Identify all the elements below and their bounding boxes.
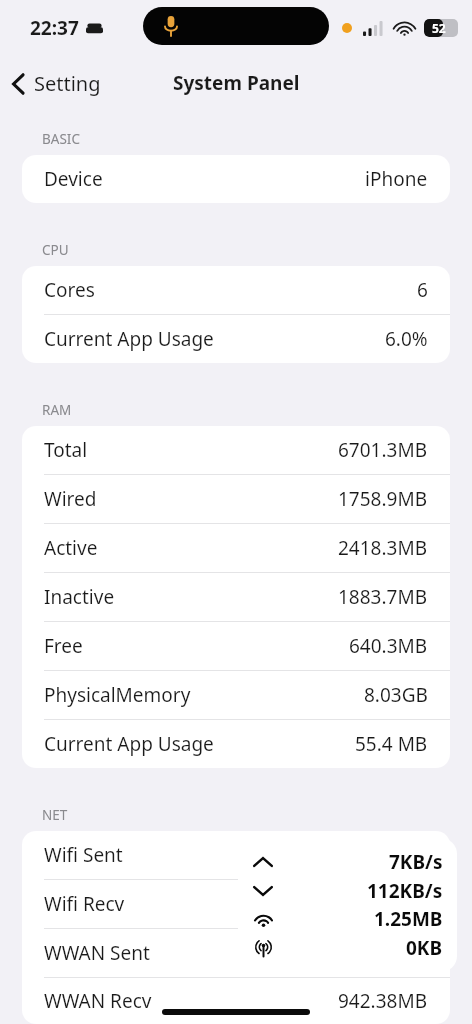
- button[interactable]: Device: [22, 155, 450, 203]
- staticText: 1883.7MB: [338, 584, 428, 610]
- button[interactable]: Current App Usage: [22, 720, 450, 768]
- staticText: 1758.9MB: [338, 486, 428, 512]
- staticText: 942.38MB: [338, 988, 428, 1014]
- staticText: RAM: [42, 401, 72, 419]
- button[interactable]: WWAN Recv: [22, 978, 450, 1024]
- button[interactable]: Current App Usage: [22, 315, 450, 363]
- button[interactable]: WWAN Sent: [22, 929, 450, 977]
- staticText: 52: [432, 20, 446, 36]
- staticText: 0.00GB: [364, 842, 428, 868]
- staticText: 6701.3MB: [338, 437, 428, 463]
- staticText: System Panel: [173, 70, 300, 96]
- staticText: 6: [417, 277, 428, 303]
- staticText: Cores: [44, 277, 95, 303]
- button[interactable]: Active: [22, 524, 450, 572]
- staticText: Free: [44, 633, 83, 659]
- staticText: 112KB/s: [367, 878, 443, 904]
- staticText: Wifi Recv: [44, 891, 125, 917]
- staticText: Active: [44, 535, 98, 561]
- button[interactable]: Wifi Recv: [22, 880, 450, 928]
- staticText: WWAN Sent: [44, 940, 150, 966]
- button[interactable]: Inactive: [22, 573, 450, 621]
- staticText: 7KB/s: [389, 849, 443, 875]
- staticText: NET: [42, 806, 68, 824]
- staticText: 8.03GB: [364, 682, 428, 708]
- staticText: 0KB: [406, 935, 443, 961]
- staticText: 640.3MB: [349, 633, 428, 659]
- staticText: Total: [44, 437, 88, 463]
- staticText: Inactive: [44, 584, 115, 610]
- staticText: 1.25MB: [374, 906, 443, 932]
- staticText: PhysicalMemory: [44, 682, 191, 708]
- button[interactable]: Setting: [0, 64, 113, 103]
- staticText: iPhone: [365, 166, 428, 192]
- button[interactable]: Total: [22, 426, 450, 474]
- button[interactable]: Free: [22, 622, 450, 670]
- button[interactable]: Wifi Sent: [22, 831, 450, 879]
- staticText: 55.4 MB: [355, 731, 428, 757]
- staticText: WWAN Recv: [44, 988, 152, 1014]
- staticText: Device: [44, 166, 103, 192]
- staticText: Current App Usage: [44, 731, 214, 757]
- staticText: Wired: [44, 486, 97, 512]
- staticText: Wifi Sent: [44, 842, 123, 868]
- staticText: Setting: [34, 70, 101, 97]
- staticText: CPU: [42, 241, 69, 259]
- button[interactable]: 7KB/s: [238, 838, 457, 972]
- staticText: 2418.3MB: [338, 535, 428, 561]
- button[interactable]: Cores: [22, 266, 450, 314]
- button[interactable]: Wired: [22, 475, 450, 523]
- button[interactable]: PhysicalMemory: [22, 671, 450, 719]
- staticText: BASIC: [42, 130, 80, 148]
- staticText: Current App Usage: [44, 326, 214, 352]
- staticText: 6.0%: [385, 326, 428, 352]
- staticText: 22:37: [30, 15, 79, 41]
